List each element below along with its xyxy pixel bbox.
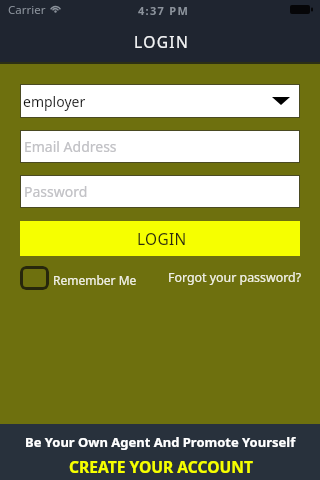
staticText: LOGIN [137,229,187,250]
button[interactable]: Password [20,175,300,208]
staticText: Password [24,182,88,201]
other: Open list [272,97,290,105]
button[interactable]: employer [20,84,300,118]
other: Wifi signal [50,5,61,13]
staticText: employer [23,92,86,111]
staticText: Be Your Own Agent And Promote Yourself [25,433,296,451]
staticText: Carrier [8,2,46,18]
other: Battery [290,5,313,14]
staticText: LOGIN [134,31,190,52]
button[interactable]: LOGIN [20,221,300,256]
staticText: Email Address [24,137,117,156]
staticText: 4:37 PM [138,3,190,18]
button[interactable]: Forgot your password? [166,270,300,287]
staticText: Remember Me [53,272,137,288]
button[interactable]: Email Address [20,130,300,163]
button[interactable]: CREATE YOUR ACCOUNT [68,455,252,476]
button[interactable]: Remember Me [20,266,137,290]
